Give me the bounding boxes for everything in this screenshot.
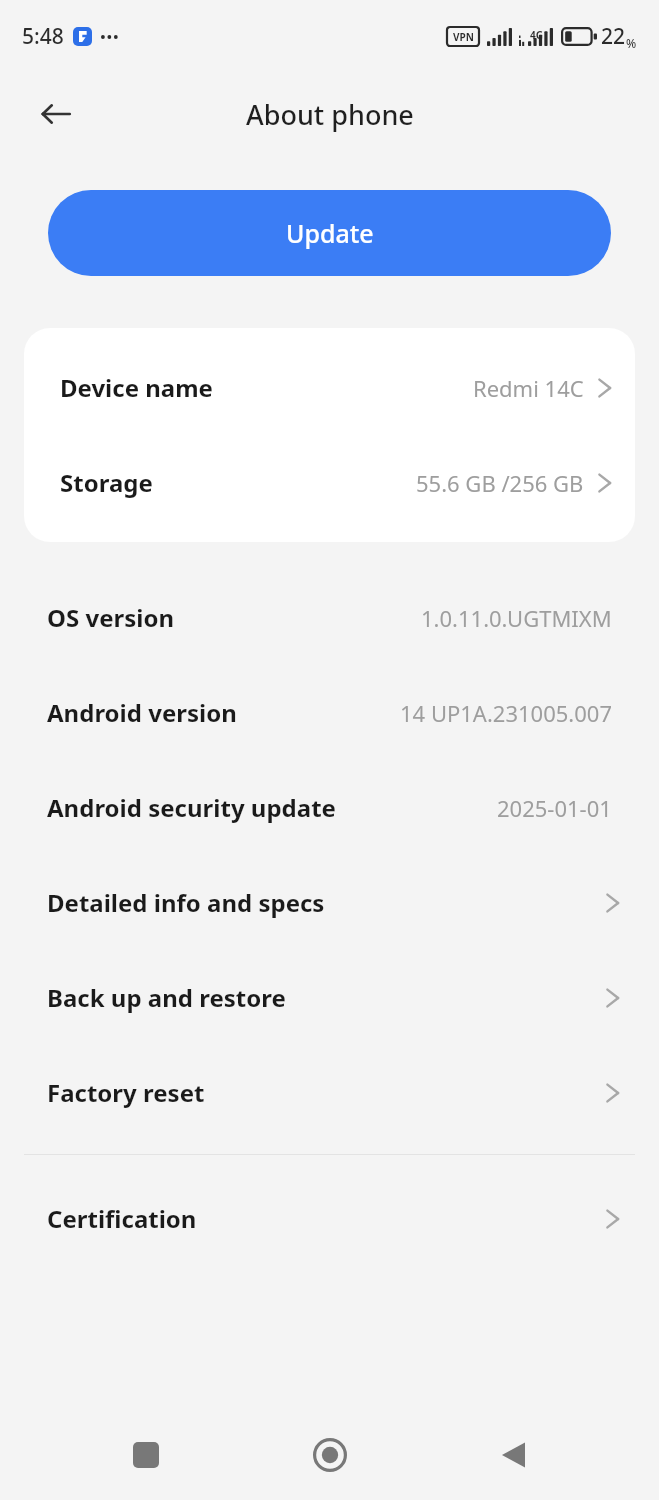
button[interactable]: Recents: [108, 1417, 184, 1493]
button[interactable]: Back: [30, 88, 82, 140]
staticText: 2025-01-01: [497, 793, 612, 823]
staticText: Device name: [60, 371, 213, 404]
button[interactable]: Storage: [24, 435, 635, 530]
staticText: Android security update: [47, 791, 336, 824]
staticText: Update: [286, 216, 374, 250]
staticText: 14 UP1A.231005.007: [400, 698, 612, 728]
button[interactable]: Factory reset: [0, 1045, 659, 1140]
button[interactable]: Detailed info and specs: [0, 855, 659, 950]
staticText: Factory reset: [47, 1076, 205, 1109]
staticText: Detailed info and specs: [47, 886, 325, 919]
staticText: About phone: [246, 96, 414, 133]
button[interactable]: Android version: [0, 665, 659, 760]
staticText: VPN: [453, 30, 474, 44]
staticText: Redmi 14C: [473, 373, 584, 403]
staticText: Storage: [60, 466, 153, 499]
button[interactable]: Home: [292, 1417, 368, 1493]
button[interactable]: Device name: [24, 340, 635, 435]
staticText: %: [626, 35, 637, 51]
button[interactable]: Back: [475, 1417, 551, 1493]
button[interactable]: Back up and restore: [0, 950, 659, 1045]
staticText: 5:48: [22, 22, 64, 51]
staticText: Back up and restore: [47, 981, 286, 1014]
staticText: OS version: [47, 601, 175, 634]
button[interactable]: Android security update: [0, 760, 659, 855]
staticText: 55.6 GB /256 GB: [416, 468, 584, 498]
staticText: 22: [601, 22, 626, 51]
staticText: Android version: [47, 696, 237, 729]
staticText: Certification: [47, 1202, 197, 1235]
staticText: 1.0.11.0.UGTMIXM: [421, 603, 612, 633]
button[interactable]: OS version: [0, 570, 659, 665]
staticText: 4G: [530, 28, 543, 42]
button[interactable]: Update: [48, 190, 611, 276]
button[interactable]: Certification: [0, 1171, 659, 1266]
